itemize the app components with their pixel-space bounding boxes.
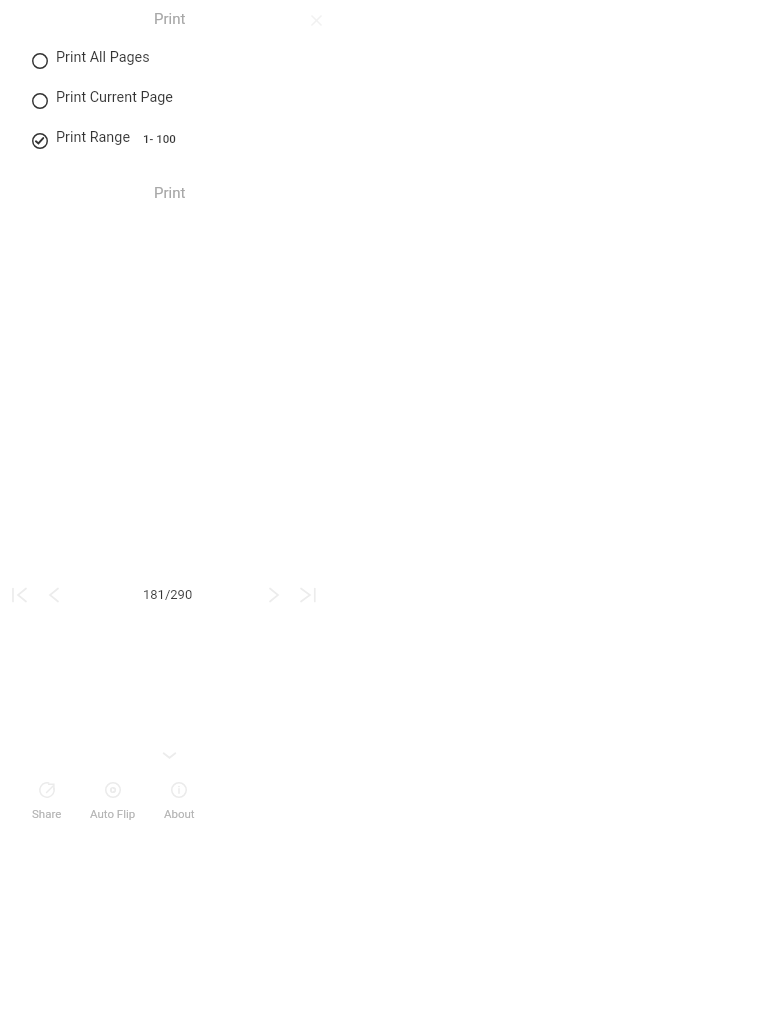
button[interactable]: Print xyxy=(148,180,192,206)
button[interactable]: About xyxy=(147,779,211,820)
staticText: Print Range xyxy=(56,129,131,146)
button[interactable]: Print All Pages xyxy=(24,46,324,76)
button[interactable]: Close xyxy=(304,8,328,32)
staticText: 181/290 xyxy=(143,587,193,602)
staticText: Auto Flip xyxy=(90,807,136,820)
staticText: Print All Pages xyxy=(56,49,150,66)
staticText: Share xyxy=(32,807,62,820)
button[interactable]: Share xyxy=(15,779,79,820)
staticText: About xyxy=(164,807,195,820)
button[interactable]: First page xyxy=(7,583,31,607)
button[interactable]: Print Range xyxy=(24,126,324,156)
button[interactable]: Previous page xyxy=(42,583,66,607)
button[interactable]: Print Current Page xyxy=(24,86,324,116)
staticText: Print xyxy=(154,184,186,202)
button[interactable]: Next page xyxy=(262,583,286,607)
staticText: Print xyxy=(154,10,186,28)
button[interactable]: Print xyxy=(148,6,192,32)
staticText: 1- 100 xyxy=(143,132,176,145)
staticText: Print Current Page xyxy=(56,89,173,106)
button[interactable]: Auto Flip xyxy=(81,779,145,820)
button[interactable]: Last page xyxy=(296,583,320,607)
button[interactable]: Collapse xyxy=(157,743,181,767)
